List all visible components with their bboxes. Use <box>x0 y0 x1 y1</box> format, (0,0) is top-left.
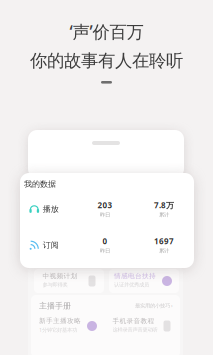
staticText: 昨日 <box>100 211 110 218</box>
staticText: 参与即得奖 <box>42 282 67 288</box>
staticText: 中视频计划 <box>42 272 77 280</box>
staticText: 情感电台扶持 <box>114 272 156 280</box>
staticText: 播放 <box>43 204 59 214</box>
button[interactable]: 播放 <box>20 197 194 221</box>
button[interactable]: 新手主播攻略 <box>34 314 104 338</box>
staticText: 新手主播攻略 <box>39 317 81 325</box>
staticText: 0 <box>102 236 107 246</box>
staticText: 7.8万 <box>154 200 174 210</box>
staticText: 你的故事有人在聆听 <box>30 50 183 71</box>
staticText: 我的数据 <box>24 179 56 189</box>
staticText: 累计 <box>159 247 169 254</box>
staticText: 203 <box>97 200 112 210</box>
button[interactable]: 手机录音教程 <box>109 314 179 338</box>
staticText: 手机录音教程 <box>112 317 154 325</box>
staticText: 主播手册 <box>39 301 71 311</box>
button[interactable]: 情感电台扶持 <box>109 269 179 293</box>
staticText: ‘声’价百万 <box>69 20 143 43</box>
staticText: 这样录音声音更动听 <box>112 327 157 333</box>
staticText: 1分钟它好基本功 <box>39 326 77 333</box>
staticText: 订阅 <box>43 240 59 250</box>
staticText: 最实用的小技巧 › <box>135 302 173 309</box>
button[interactable]: 订阅 <box>20 233 194 257</box>
staticText: 昨日 <box>100 247 110 254</box>
staticText: 累计 <box>159 211 169 218</box>
staticText: 认证并优秀成员 <box>114 282 149 288</box>
button[interactable]: 中视频计划 <box>34 269 104 293</box>
staticText: 1697 <box>154 236 174 246</box>
